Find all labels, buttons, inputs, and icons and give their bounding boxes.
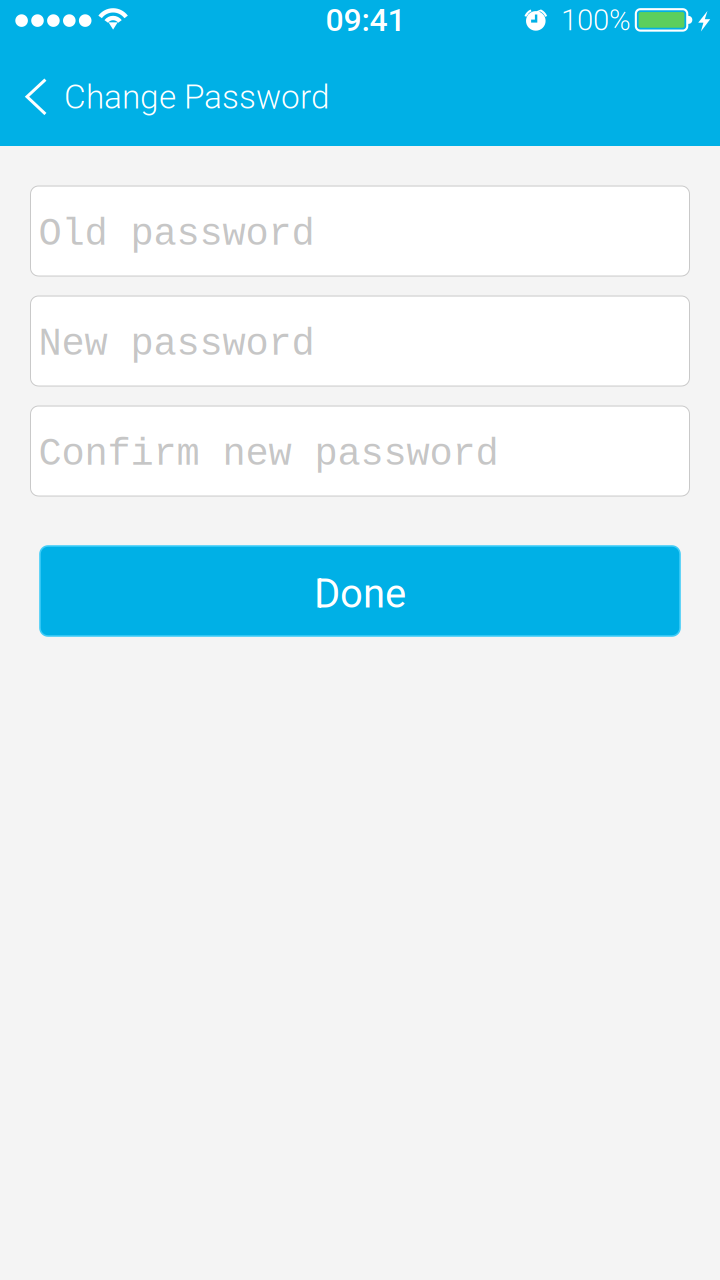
button[interactable]: New password	[30, 296, 689, 386]
button[interactable]: Done	[40, 546, 680, 636]
button[interactable]: Old password	[30, 186, 689, 276]
staticText: Old password	[38, 213, 314, 256]
staticText: 100%	[561, 3, 631, 37]
staticText: 09:41	[325, 1, 405, 39]
button[interactable]: Confirm new password	[30, 406, 689, 496]
button[interactable]: Change Password	[0, 48, 348, 146]
staticText: Change Password	[64, 77, 330, 117]
staticText: Done	[314, 570, 406, 617]
staticText: Confirm new password	[38, 433, 498, 476]
staticText: New password	[38, 323, 314, 366]
